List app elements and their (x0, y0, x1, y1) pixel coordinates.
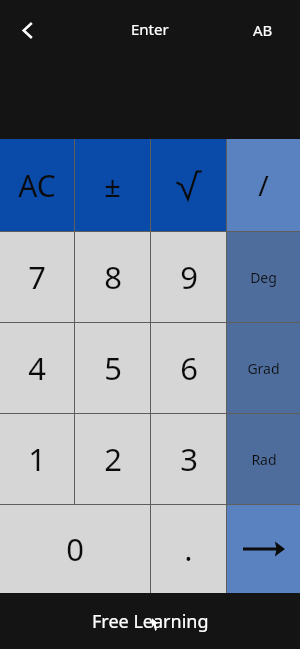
button[interactable]: AC (0, 139, 74, 231)
staticText: 2 (104, 438, 122, 480)
button[interactable]: Enter (227, 505, 300, 593)
staticText: AC (18, 165, 56, 206)
staticText: 5 (104, 347, 122, 389)
button[interactable]: 2 (75, 414, 150, 504)
staticText: 7 (28, 256, 46, 298)
button[interactable]: . (151, 505, 226, 593)
button[interactable]: ± (75, 139, 150, 231)
staticText: Free Learning (92, 609, 209, 634)
staticText: 6 (180, 347, 198, 389)
button[interactable]: 0 (0, 505, 150, 593)
button[interactable]: 7 (0, 232, 74, 322)
staticText: Deg (250, 268, 277, 287)
button[interactable]: Back (0, 3, 54, 57)
staticText: 9 (180, 256, 198, 298)
staticText: 8 (104, 256, 122, 298)
staticText: Enter (131, 19, 169, 39)
staticText: Rad (251, 450, 277, 469)
button[interactable]: Grad (227, 323, 300, 413)
staticText: / (258, 166, 269, 204)
staticText: AB (253, 20, 273, 40)
staticText: 0 (66, 528, 84, 570)
button[interactable]: 9 (151, 232, 226, 322)
staticText: ± (104, 166, 121, 205)
button[interactable]: / (227, 139, 300, 231)
staticText: 4 (28, 347, 46, 389)
button[interactable]: 5 (75, 323, 150, 413)
button[interactable]: 3 (151, 414, 226, 504)
button[interactable]: Deg (227, 232, 300, 322)
button[interactable]: 1 (0, 414, 74, 504)
button[interactable]: AB (238, 3, 300, 57)
button[interactable]: Rad (227, 414, 300, 504)
button[interactable]: 6 (151, 323, 226, 413)
button[interactable]: 8 (75, 232, 150, 322)
staticText: Grad (247, 359, 280, 378)
staticText: 1 (28, 438, 46, 480)
button[interactable]: 4 (0, 323, 74, 413)
button[interactable]: Square root (151, 139, 226, 231)
staticText: 3 (180, 438, 198, 480)
staticText: . (184, 528, 193, 570)
